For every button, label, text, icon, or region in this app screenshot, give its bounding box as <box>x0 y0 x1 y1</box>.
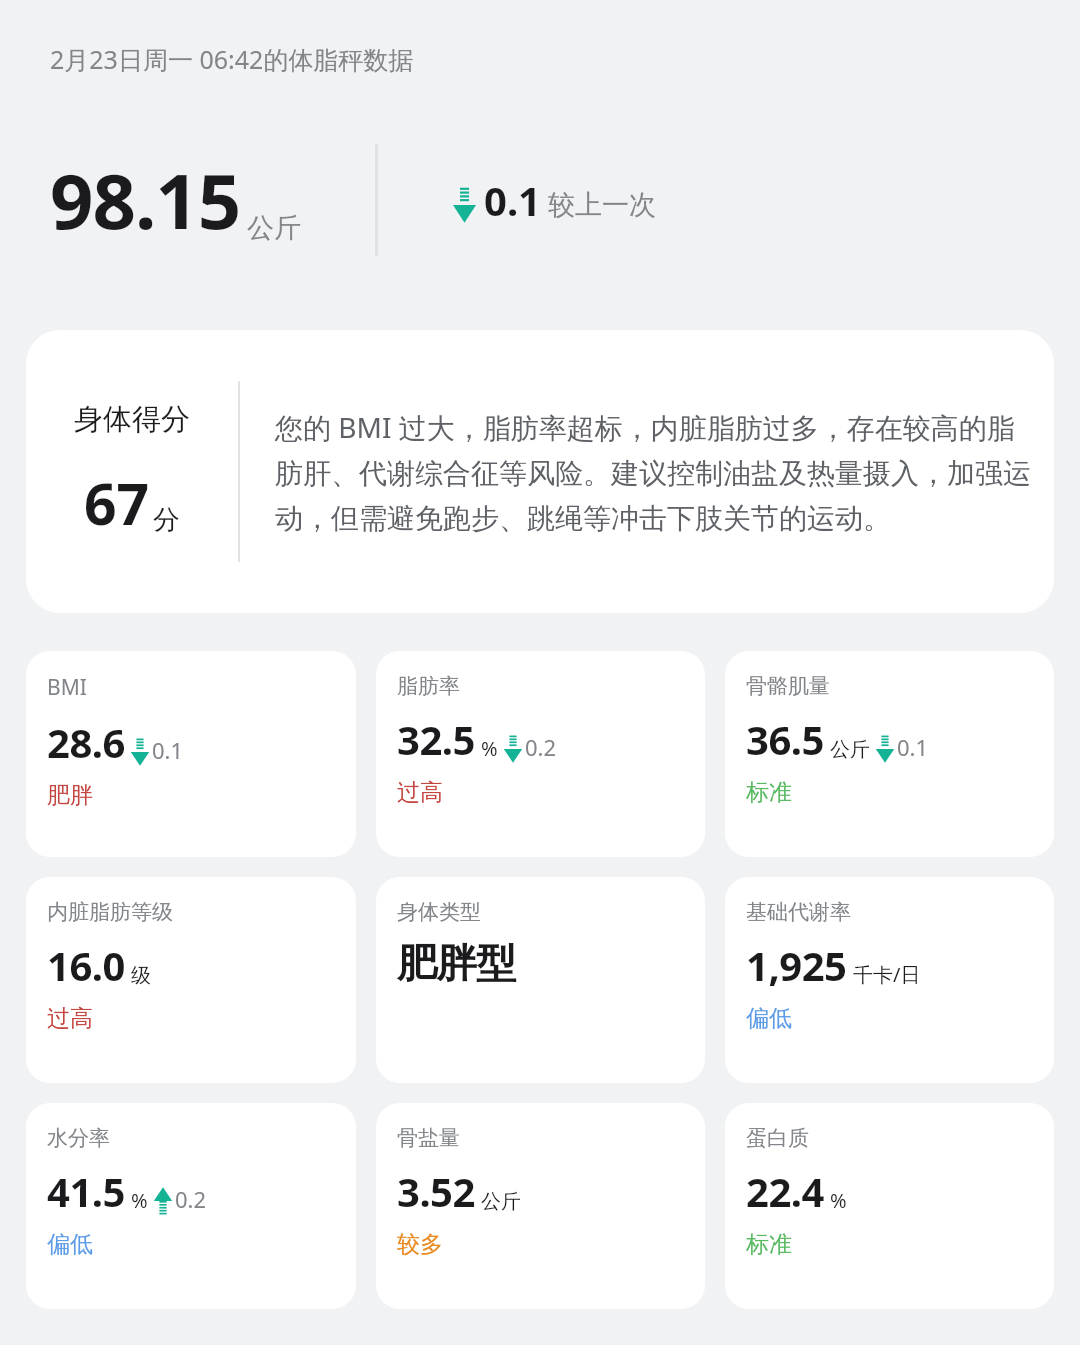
staticText: 0.1 <box>897 732 929 762</box>
staticText: 0.2 <box>175 1184 207 1214</box>
staticText: % <box>481 735 498 762</box>
staticText: 公斤 <box>830 737 870 762</box>
staticText: 千卡/日 <box>853 961 921 988</box>
button[interactable]: BMI <box>26 651 356 857</box>
staticText: 蛋白质 <box>746 1125 809 1151</box>
staticText: 肥胖型 <box>397 938 516 988</box>
button[interactable]: 蛋白质 <box>725 1103 1054 1309</box>
staticText: 公斤 <box>247 211 301 245</box>
staticText: 0.1 <box>484 173 541 227</box>
staticText: 3.52 <box>397 1164 475 1218</box>
staticText: 水分率 <box>47 1125 110 1151</box>
staticText: 较上一次 <box>548 188 656 222</box>
staticText: % <box>830 1187 847 1214</box>
staticText: 36.5 <box>746 712 824 766</box>
staticText: 28.6 <box>47 715 125 769</box>
staticText: 脂肪率 <box>397 673 460 699</box>
staticText: 标准 <box>746 778 792 807</box>
staticText: 您的 BMI 过大，脂肪率超标，内脏脂肪过多，存在较高的脂肪肝、代谢综合征等风险… <box>275 408 1032 536</box>
staticText: 2月23日周一 06:42的体脂秤数据 <box>50 42 414 76</box>
button[interactable]: 基础代谢率 <box>725 877 1054 1083</box>
staticText: 67 <box>84 464 150 542</box>
staticText: 98.15 <box>50 148 241 252</box>
staticText: 内脏脂肪等级 <box>47 899 173 925</box>
staticText: 标准 <box>746 1230 792 1259</box>
staticText: 过高 <box>397 778 443 807</box>
staticText: 1,925 <box>746 938 847 992</box>
staticText: 身体类型 <box>397 899 481 925</box>
staticText: 公斤 <box>481 1189 521 1214</box>
staticText: 偏低 <box>47 1230 93 1259</box>
staticText: BMI <box>47 673 87 702</box>
staticText: 肥胖 <box>47 781 93 810</box>
staticText: 骨骼肌量 <box>746 673 830 699</box>
staticText: 32.5 <box>397 712 475 766</box>
staticText: 较多 <box>397 1230 443 1259</box>
staticText: 16.0 <box>47 938 125 992</box>
staticText: 41.5 <box>47 1164 125 1218</box>
staticText: % <box>131 1187 148 1214</box>
staticText: 偏低 <box>746 1004 792 1033</box>
staticText: 过高 <box>47 1004 93 1033</box>
button[interactable]: 身体得分 <box>26 330 1054 613</box>
button[interactable]: 水分率 <box>26 1103 356 1309</box>
staticText: 22.4 <box>746 1164 824 1218</box>
staticText: 分 <box>153 503 180 537</box>
staticText: 0.2 <box>525 732 557 762</box>
button[interactable]: 身体类型 <box>376 877 705 1083</box>
staticText: 骨盐量 <box>397 1125 460 1151</box>
button[interactable]: 脂肪率 <box>376 651 705 857</box>
staticText: 0.1 <box>152 735 184 765</box>
staticText: 级 <box>131 963 151 988</box>
button[interactable]: 内脏脂肪等级 <box>26 877 356 1083</box>
button[interactable]: 骨盐量 <box>376 1103 705 1309</box>
staticText: 基础代谢率 <box>746 899 851 925</box>
staticText: 身体得分 <box>74 401 190 438</box>
button[interactable]: 骨骼肌量 <box>725 651 1054 857</box>
